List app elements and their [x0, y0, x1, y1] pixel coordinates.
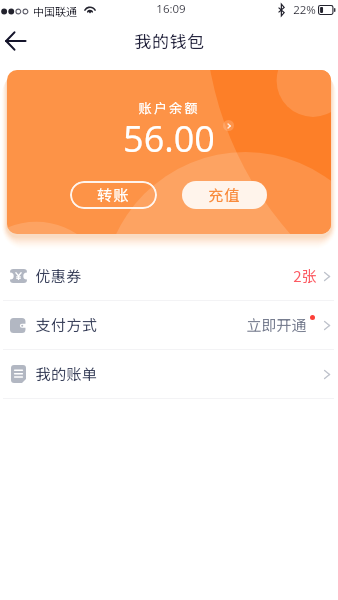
- staticText: 立即开通: [246, 314, 307, 336]
- button[interactable]: Back: [0, 22, 31, 59]
- button[interactable]: 转账: [70, 181, 157, 209]
- staticText: 中国联通: [33, 3, 77, 19]
- staticText: 2张: [293, 265, 317, 287]
- staticText: 56.00: [123, 114, 215, 163]
- staticText: 22%: [293, 2, 316, 18]
- staticText: 优惠券: [35, 265, 82, 287]
- button[interactable]: 充值: [182, 181, 267, 209]
- staticText: 我的钱包: [134, 28, 205, 53]
- staticText: 转账: [97, 184, 130, 206]
- staticText: 充值: [208, 184, 241, 206]
- staticText: 我的账单: [35, 363, 98, 385]
- staticText: 支付方式: [35, 314, 98, 336]
- button[interactable]: Balance details: [223, 120, 234, 131]
- button[interactable]: 我的账单: [0, 350, 338, 398]
- staticText: 账户余额: [138, 98, 200, 117]
- staticText: 16:09: [156, 1, 186, 17]
- button[interactable]: 支付方式: [0, 301, 338, 349]
- button[interactable]: 优惠券: [0, 252, 338, 300]
